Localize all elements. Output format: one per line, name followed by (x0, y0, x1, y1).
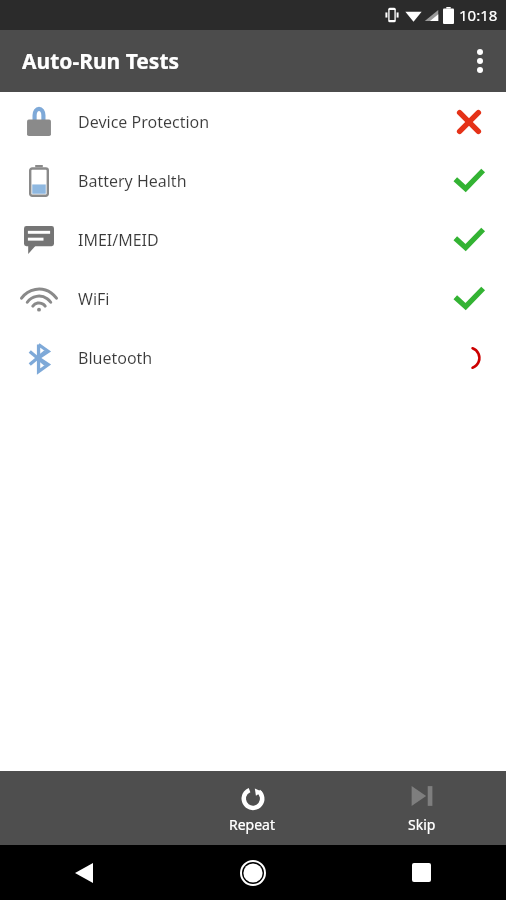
button[interactable]: WiFi (0, 269, 506, 328)
button[interactable]: Back (0, 845, 168, 900)
staticText: Battery Health (78, 170, 187, 192)
button[interactable]: Battery Health (0, 151, 506, 210)
staticText: 10:18 (459, 5, 498, 25)
button[interactable]: Skip (337, 771, 506, 845)
staticText: Auto-Run Tests (22, 47, 180, 76)
staticText: Device Protection (78, 111, 210, 133)
button[interactable]: More options (454, 35, 506, 87)
button[interactable]: Repeat (168, 771, 337, 845)
button[interactable]: IMEI/MEID (0, 210, 506, 269)
button[interactable]: Device Protection (0, 92, 506, 151)
button[interactable]: Home (168, 845, 337, 900)
staticText: Bluetooth (78, 347, 153, 369)
staticText: Repeat (229, 815, 276, 834)
button[interactable]: Bluetooth (0, 328, 506, 387)
staticText: IMEI/MEID (78, 229, 159, 251)
staticText: WiFi (78, 288, 110, 310)
button[interactable]: Recent apps (337, 845, 506, 900)
staticText: Skip (408, 815, 436, 834)
